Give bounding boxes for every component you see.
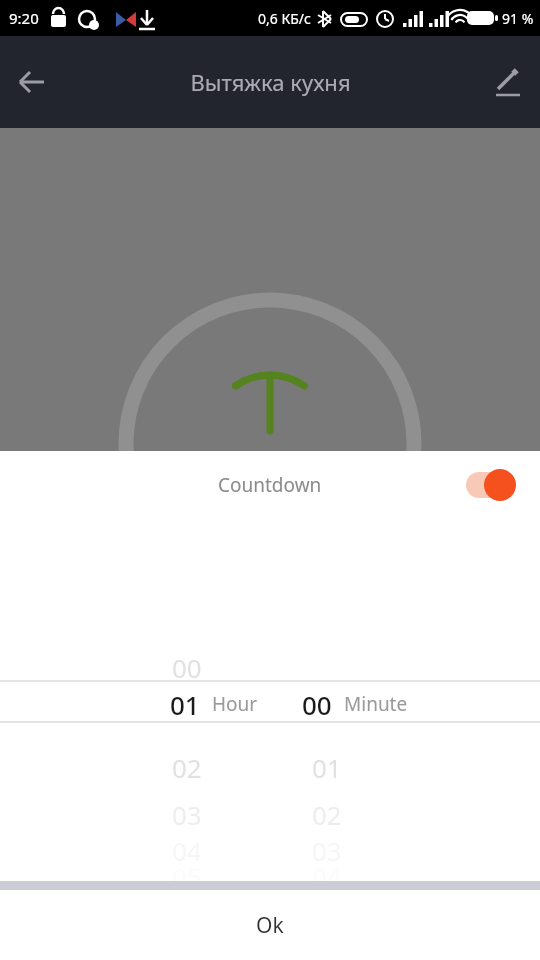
staticText: 04 — [172, 833, 202, 868]
button[interactable]: Edit — [476, 50, 540, 114]
button[interactable]: Countdown toggle — [464, 465, 526, 505]
staticText: 9:20 — [9, 8, 39, 28]
button[interactable]: Back — [0, 50, 64, 114]
staticText: 02 — [172, 750, 202, 785]
staticText: 02 — [312, 797, 342, 832]
staticText: 01 — [170, 687, 200, 722]
staticText: Countdown — [218, 472, 322, 498]
staticText: 00 — [172, 650, 202, 685]
staticText: 03 — [172, 797, 202, 832]
staticText: Вытяжка кухня — [190, 67, 351, 97]
button[interactable]: Countdown — [0, 451, 540, 519]
staticText: Hour — [212, 691, 258, 717]
button[interactable]: 01 — [0, 686, 540, 722]
staticText: Ok — [256, 911, 284, 940]
staticText: 01 — [312, 750, 342, 785]
staticText: 04 — [312, 859, 342, 894]
staticText: 0,6 КБ/с — [258, 9, 311, 28]
staticText: Minute — [344, 691, 408, 717]
staticText: 05 — [172, 859, 202, 894]
staticText: 03 — [312, 833, 342, 868]
button[interactable]: Ok — [0, 890, 540, 960]
staticText: 91 % — [502, 9, 534, 28]
staticText: 00 — [302, 687, 332, 722]
